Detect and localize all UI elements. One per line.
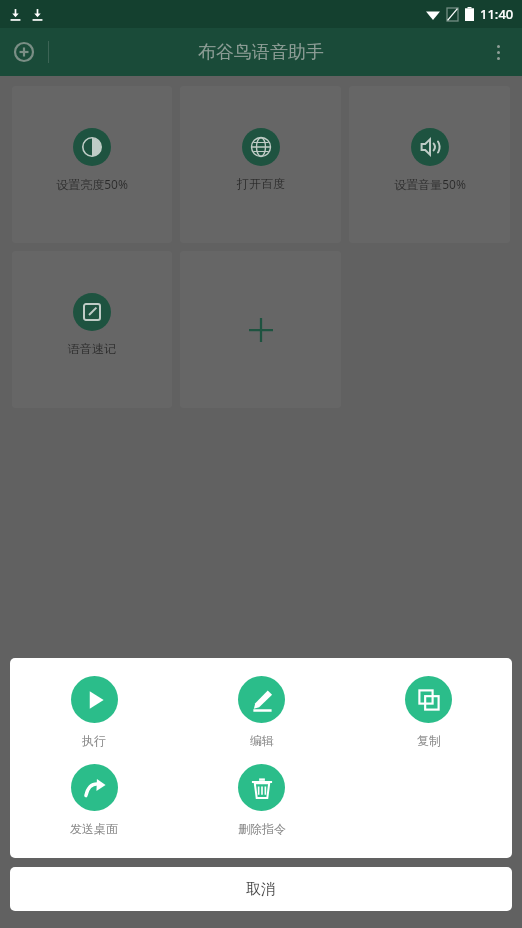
button[interactable]: Add new command <box>180 251 341 408</box>
staticText: 删除指令 <box>238 821 286 836</box>
button[interactable]: Add command <box>0 28 48 76</box>
staticText: 设置亮度50% <box>56 176 128 192</box>
button[interactable]: 语音速记 <box>12 251 172 408</box>
button[interactable]: 取消 <box>10 867 512 911</box>
staticText: 语音速记 <box>68 341 116 356</box>
button[interactable]: Delete command <box>178 760 345 840</box>
staticText: 发送桌面 <box>70 821 118 836</box>
button[interactable]: Copy <box>345 672 512 752</box>
button[interactable]: Execute <box>10 672 178 752</box>
staticText: 编辑 <box>250 733 274 748</box>
staticText: 取消 <box>246 880 276 899</box>
button[interactable]: 设置亮度50% <box>12 86 172 243</box>
button[interactable]: More options <box>474 28 522 76</box>
staticText: 设置音量50% <box>394 176 466 192</box>
staticText: 复制 <box>417 733 441 748</box>
button[interactable]: 设置音量50% <box>349 86 510 243</box>
button[interactable]: Edit <box>178 672 345 752</box>
staticText: 布谷鸟语音助手 <box>198 41 324 64</box>
staticText: 执行 <box>82 733 106 748</box>
button[interactable]: 打开百度 <box>180 86 341 243</box>
button[interactable]: Send to desktop <box>10 760 178 840</box>
staticText: 打开百度 <box>237 176 285 191</box>
staticText: 11:40 <box>480 5 514 23</box>
